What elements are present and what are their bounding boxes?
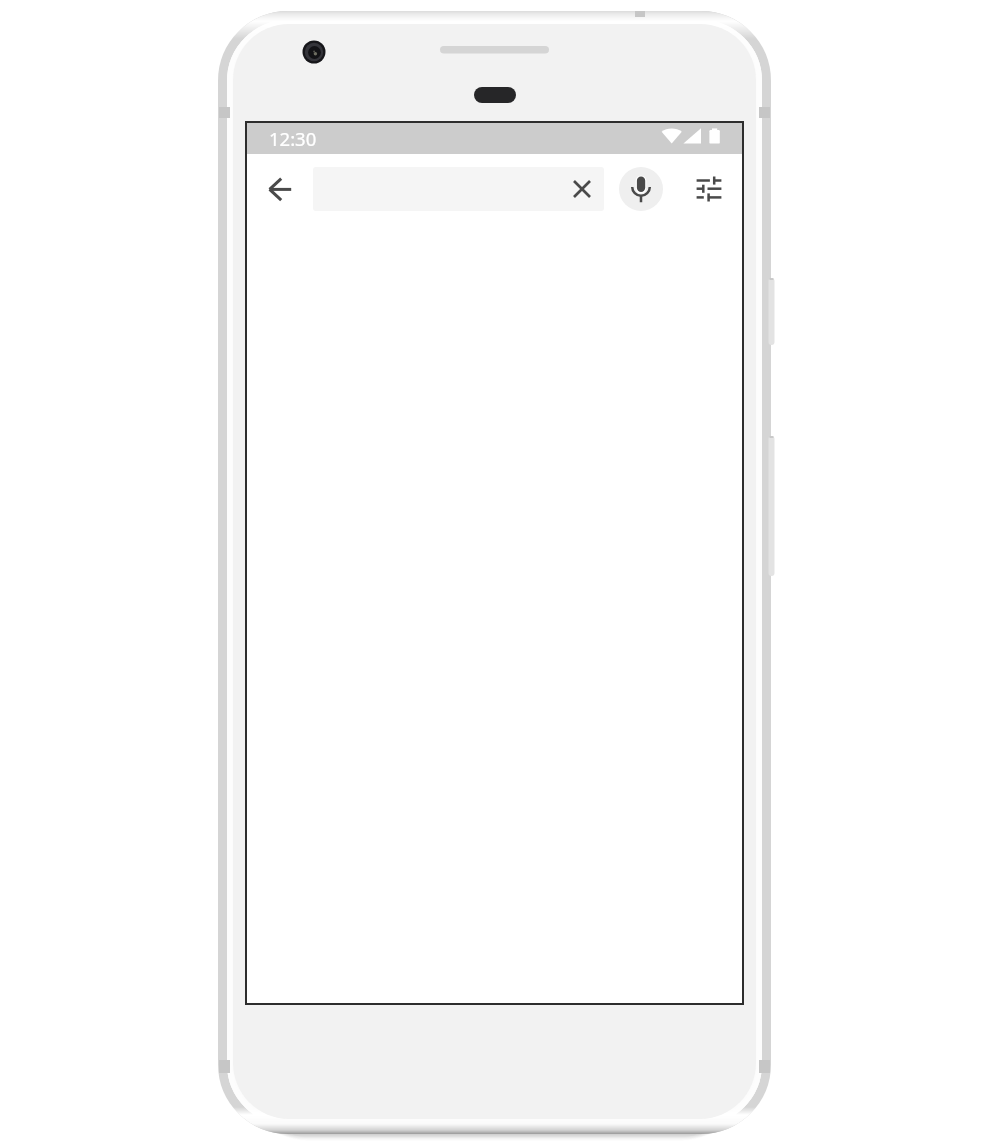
staticText: 12:30 xyxy=(269,126,317,151)
button[interactable]: Voice search xyxy=(619,167,663,211)
button[interactable]: Back xyxy=(256,165,304,213)
button[interactable]: Clear search xyxy=(560,167,604,211)
button[interactable]: Search filters xyxy=(687,167,731,211)
button[interactable]: Search xyxy=(313,167,604,211)
